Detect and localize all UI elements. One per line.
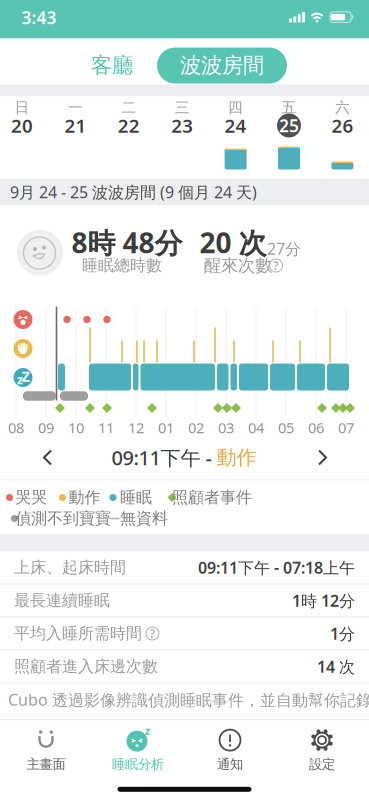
button[interactable]: z (98, 724, 178, 776)
button[interactable]: 上一個事件 (33, 442, 63, 472)
staticText: 設定 (309, 756, 335, 772)
button[interactable]: 平均入睡所需時間說明 (146, 627, 159, 640)
staticText: 睡眠總時數 (82, 256, 162, 275)
staticText: 偵測不到寶寶 (15, 509, 111, 528)
staticText: 上床、起床時間 (14, 558, 126, 577)
staticText: 照顧者事件 (172, 488, 252, 507)
button[interactable]: 設定 (282, 724, 362, 776)
staticText: 1時 12分 (292, 590, 355, 611)
staticText: 睡眠 (120, 488, 152, 507)
staticText: 通知 (217, 756, 243, 772)
staticText: 12 (128, 418, 144, 437)
staticText: 14 次 (317, 656, 355, 677)
staticText: 動作 (68, 488, 100, 507)
staticText: 四 (228, 98, 243, 116)
staticText: 一 (68, 98, 83, 116)
staticText: 04 (248, 418, 264, 437)
staticText: 21 (64, 113, 86, 138)
staticText: 22 (118, 113, 140, 138)
staticText: z (145, 723, 150, 738)
staticText: 02 (188, 418, 204, 437)
staticText: 主畫面 (26, 756, 65, 772)
staticText: 20 (11, 113, 33, 138)
button[interactable]: 波波房間 (157, 47, 287, 83)
staticText: 25 (279, 114, 299, 137)
staticText: 08 (8, 418, 24, 437)
staticText: ? (149, 625, 155, 641)
button[interactable]: 日 (0, 96, 48, 178)
staticText: 照顧者進入床邊次數 (14, 657, 158, 676)
staticText: 睡眠分析 (112, 756, 164, 772)
staticText: 07 (338, 418, 354, 437)
staticText: 六 (335, 98, 350, 116)
staticText: 三 (175, 98, 190, 116)
staticText: 01 (158, 418, 174, 437)
button[interactable]: 客廳 (82, 45, 142, 85)
button[interactable]: 一 (49, 96, 101, 178)
button[interactable]: 四 (210, 96, 262, 178)
staticText: 05 (278, 418, 294, 437)
staticText: 9月 24 - 25 波波房間 (9 個月 24 天) (10, 181, 257, 203)
staticText: 09 (38, 418, 54, 437)
staticText: 最長連續睡眠 (14, 591, 110, 610)
staticText: 日 (14, 98, 29, 116)
staticText: 波波房間 (180, 52, 264, 79)
staticText: 二 (121, 98, 136, 116)
staticText: 客廳 (91, 52, 133, 79)
staticText: 8時 48分 (71, 224, 182, 261)
staticText: 06 (308, 418, 324, 437)
staticText: 平均入睡所需時間 (14, 624, 142, 643)
button[interactable]: 三 (156, 96, 208, 178)
staticText: 09:11下午 - 07:18上午 (198, 557, 355, 578)
staticText: 10 (68, 418, 84, 437)
staticText: 27分 (267, 238, 301, 259)
button[interactable]: 下一個事件 (307, 442, 337, 472)
staticText: ? (273, 257, 279, 273)
staticText: 五 (281, 98, 296, 116)
staticText: 醒來次數 (204, 255, 272, 276)
staticText: 無資料 (120, 509, 168, 528)
staticText: Cubo 透過影像辨識偵測睡眠事件，並自動幫你記錄每天寶寶睡 (8, 689, 369, 710)
button[interactable]: 主畫面 (6, 724, 86, 776)
button[interactable]: 六 (316, 96, 368, 178)
button[interactable]: 醒來次數說明 (269, 259, 282, 272)
staticText: 09:11下午 - (111, 444, 216, 471)
staticText: 11 (98, 418, 114, 437)
staticText: 動作 (216, 445, 256, 470)
button[interactable]: 二 (103, 96, 155, 178)
staticText: 3:43 (21, 6, 56, 29)
staticText: 03 (218, 418, 234, 437)
staticText: 26 (331, 113, 353, 138)
staticText: 23 (171, 113, 193, 138)
staticText: 20 次 (199, 224, 266, 261)
button[interactable]: 五 (263, 96, 315, 178)
staticText: z (17, 371, 23, 387)
staticText: 哭哭 (15, 488, 47, 507)
button[interactable]: 通知 (190, 724, 270, 776)
staticText: Z (21, 366, 29, 386)
staticText: 24 (225, 113, 247, 138)
staticText: 1分 (330, 623, 355, 644)
